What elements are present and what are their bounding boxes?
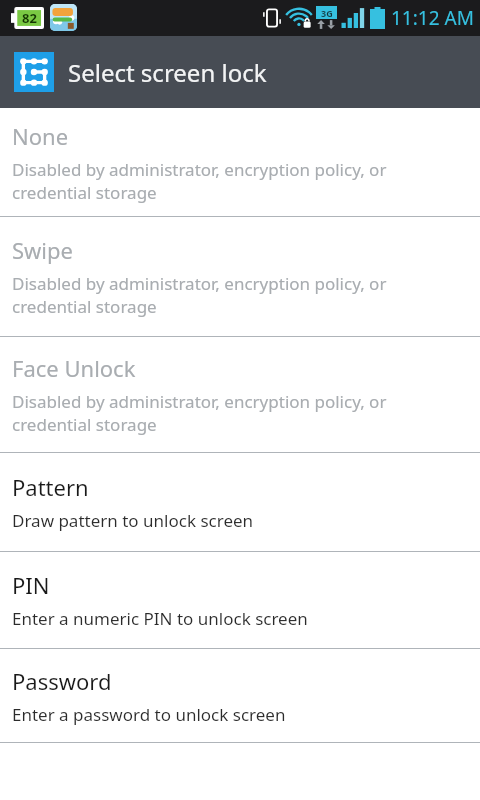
staticText: Draw pattern to unlock screen (12, 509, 254, 532)
staticText: Select screen lock (68, 56, 267, 89)
staticText: 82 (22, 9, 37, 27)
staticText: PIN (12, 570, 50, 600)
button[interactable]: Pattern (0, 453, 480, 551)
button[interactable]: Password (0, 649, 480, 742)
button[interactable]: Swipe (0, 217, 480, 336)
staticText: Pattern (12, 472, 89, 502)
staticText: Swipe (12, 235, 73, 265)
staticText: Enter a password to unlock screen (12, 703, 286, 726)
staticText: Disabled by administrator, encryption po… (12, 158, 456, 204)
button[interactable]: None (0, 108, 480, 216)
staticText: 11:12 AM (391, 5, 474, 31)
staticText: 3G (321, 7, 333, 19)
staticText: None (12, 121, 69, 151)
staticText: Disabled by administrator, encryption po… (12, 272, 456, 318)
button[interactable]: PIN (0, 552, 480, 648)
staticText: Disabled by administrator, encryption po… (12, 390, 456, 436)
staticText: Enter a numeric PIN to unlock screen (12, 607, 308, 630)
button[interactable]: Face Unlock (0, 337, 480, 452)
staticText: Password (12, 666, 112, 696)
other: Screen lock (14, 52, 54, 92)
staticText: Face Unlock (12, 353, 136, 383)
